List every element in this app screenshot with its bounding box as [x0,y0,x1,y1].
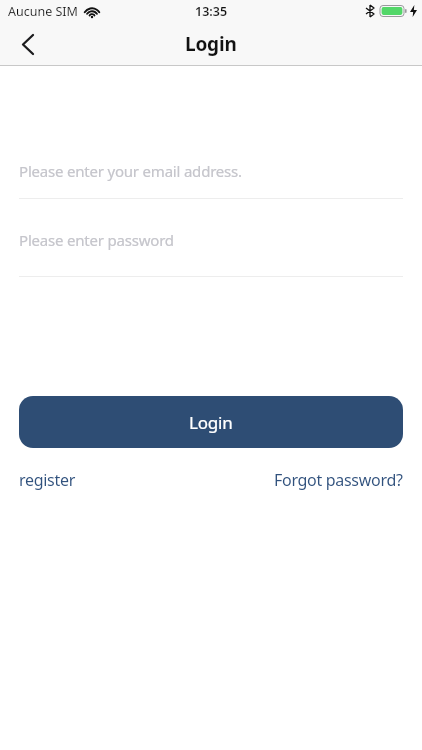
button[interactable] [12,26,44,62]
button[interactable]: Login [19,396,403,448]
staticText: Aucune SIM [8,3,78,20]
button[interactable]: Please enter password [0,221,422,259]
staticText: Login [185,31,237,57]
button[interactable]: register [19,469,75,491]
button[interactable]: Forgot password? [274,469,403,491]
staticText: 13:35 [195,3,228,20]
button[interactable]: Please enter your email address. [0,152,422,190]
staticText: Please enter password [19,230,174,250]
staticText: Login [189,411,233,434]
staticText: Please enter your email address. [19,161,242,181]
